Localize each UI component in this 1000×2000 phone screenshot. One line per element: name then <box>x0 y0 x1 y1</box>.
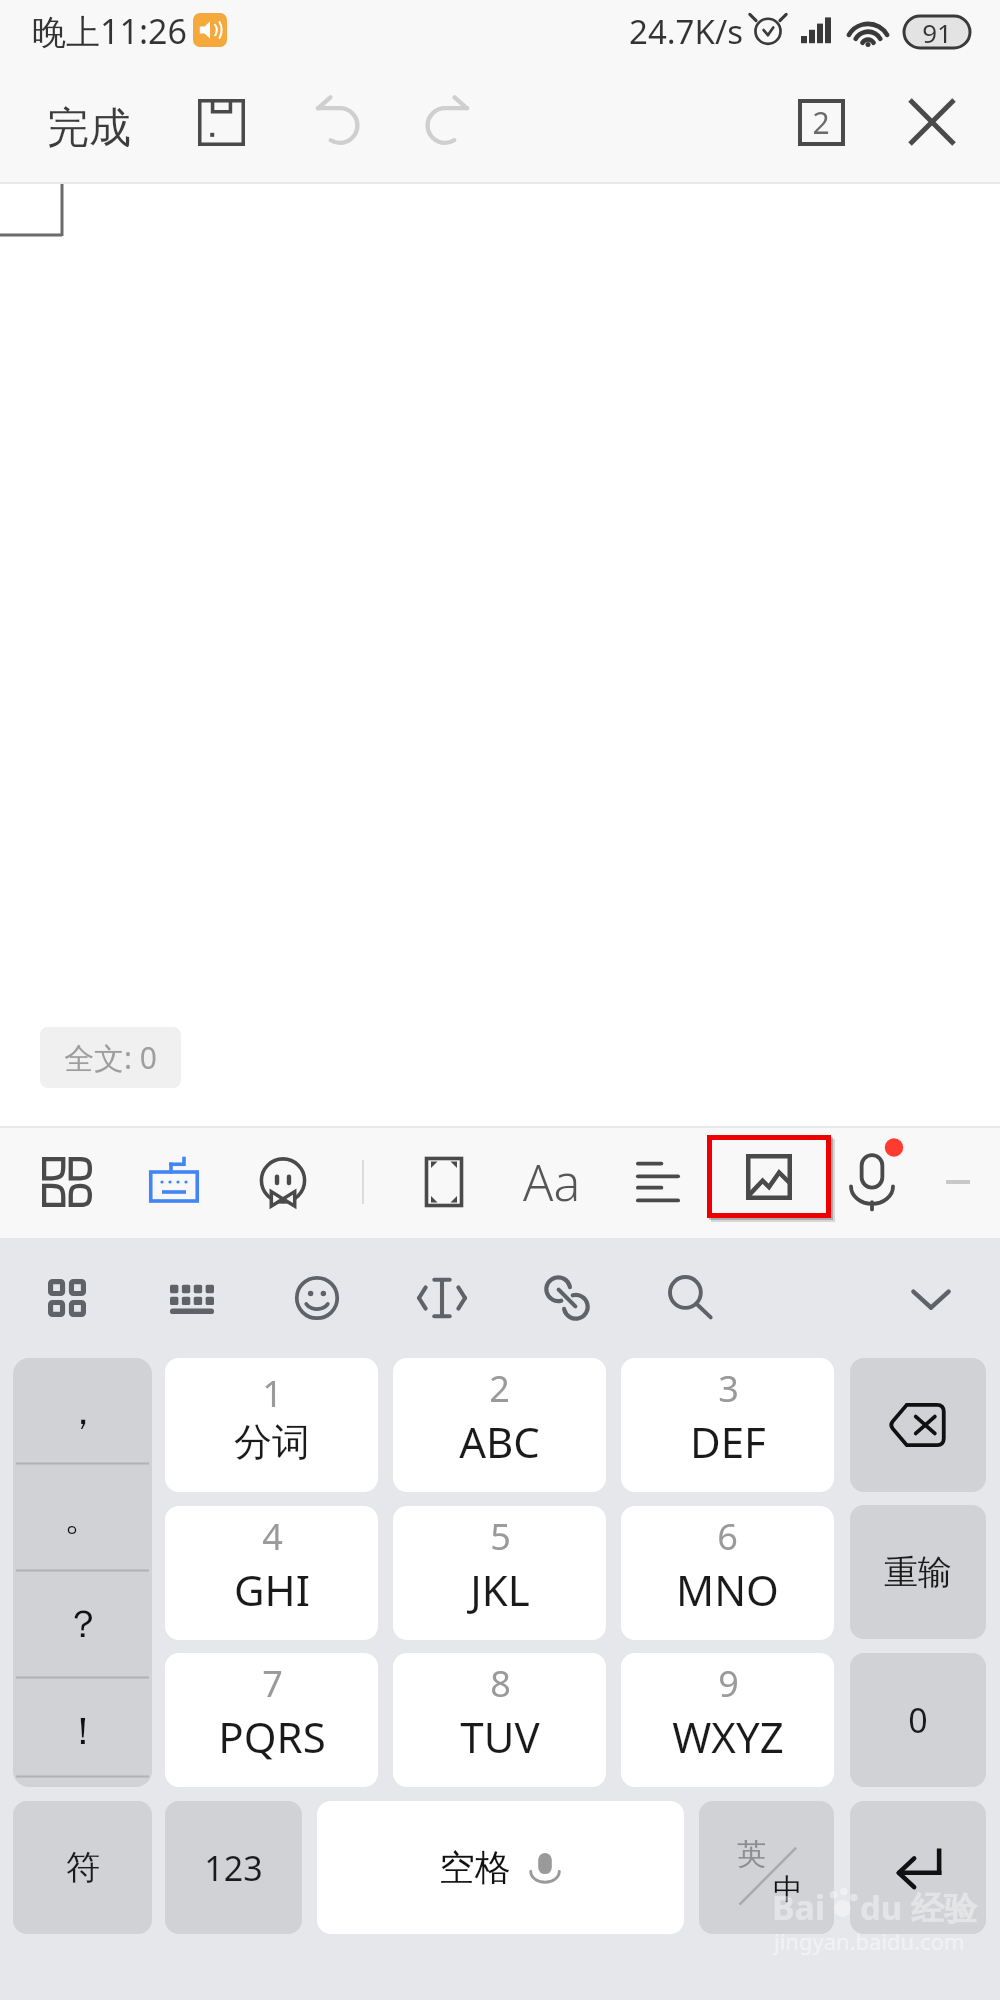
staticText: 7 <box>262 1659 283 1708</box>
button[interactable]: Align <box>614 1138 702 1226</box>
staticText: ！ <box>64 1707 102 1755</box>
staticText: jingyan.baidu.com <box>774 1926 965 1956</box>
staticText: 123 <box>204 1845 263 1891</box>
staticText: 0 <box>908 1697 928 1743</box>
button[interactable]: 6 <box>621 1506 834 1640</box>
button[interactable]: 1 <box>165 1358 378 1492</box>
button[interactable]: 空格 <box>317 1801 684 1934</box>
button[interactable]: 全文: 0 <box>40 1027 181 1088</box>
staticText: 分词 <box>234 1418 310 1466</box>
button[interactable]: Clipboard <box>531 1262 603 1334</box>
button[interactable]: Keyboard layout <box>156 1262 228 1334</box>
button[interactable]: Fullscreen <box>400 1138 488 1226</box>
staticText: 8 <box>490 1659 511 1708</box>
staticText: 91 <box>922 15 952 49</box>
staticText: TUV <box>460 1708 540 1765</box>
button[interactable]: 重输 <box>850 1505 986 1639</box>
button[interactable]: Enter <box>850 1801 986 1934</box>
staticText: 2 <box>812 102 830 143</box>
staticText: GHI <box>234 1561 310 1618</box>
staticText: 。 <box>64 1493 102 1541</box>
button[interactable]: 符 <box>13 1801 152 1934</box>
button[interactable]: Grid <box>31 1262 103 1334</box>
button[interactable]: Apps <box>23 1138 111 1226</box>
button[interactable]: Sticker <box>239 1138 327 1226</box>
button[interactable]: Hide keyboard <box>895 1262 967 1334</box>
staticText: 2 <box>489 1364 510 1413</box>
staticText: 重输 <box>884 1551 952 1594</box>
button[interactable]: 英 <box>699 1801 834 1934</box>
staticText: 符 <box>66 1846 100 1889</box>
button[interactable]: Keyboard <box>130 1138 218 1226</box>
button[interactable]: Aa <box>508 1138 596 1226</box>
staticText: 9 <box>718 1659 739 1708</box>
button[interactable]: Search <box>654 1262 726 1334</box>
button[interactable]: Undo <box>296 78 384 166</box>
staticText: 空格 <box>439 1845 511 1890</box>
button[interactable]: Save <box>177 78 265 166</box>
staticText: 英 <box>737 1836 766 1873</box>
button[interactable]: 完成 <box>26 78 152 178</box>
button[interactable]: 。 <box>13 1464 152 1570</box>
button[interactable]: ？ <box>13 1571 152 1677</box>
staticText: MNO <box>676 1561 779 1618</box>
button[interactable]: 7 <box>165 1653 378 1787</box>
staticText: WXYZ <box>672 1708 784 1765</box>
button[interactable]: Insert image <box>707 1135 831 1218</box>
button[interactable]: Close <box>888 78 976 166</box>
button[interactable]: 8 <box>393 1653 606 1787</box>
button[interactable]: 9 <box>621 1653 834 1787</box>
button[interactable]: Voice input <box>838 1148 906 1216</box>
button[interactable]: 4 <box>165 1506 378 1640</box>
staticText: du 经验 <box>860 1885 977 1930</box>
staticText: 中 <box>773 1871 802 1908</box>
button[interactable]: Backspace <box>850 1358 986 1492</box>
staticText: 全文: 0 <box>64 1037 157 1078</box>
staticText: 6 <box>717 1512 738 1561</box>
staticText: JKL <box>470 1561 530 1618</box>
staticText: 1 <box>262 1369 283 1418</box>
staticText: 晚上11:26 <box>32 8 187 54</box>
button[interactable]: 0 <box>850 1653 986 1787</box>
staticText: PQRS <box>218 1708 326 1765</box>
button[interactable]: Redo <box>401 78 489 166</box>
staticText: ABC <box>459 1413 540 1470</box>
staticText: 24.7K/s <box>629 9 743 54</box>
button[interactable]: 2 <box>393 1358 606 1492</box>
staticText: 5 <box>490 1512 511 1561</box>
button[interactable]: 5 <box>393 1506 606 1640</box>
button[interactable]: ， <box>13 1358 152 1463</box>
button[interactable]: Emoji <box>281 1262 353 1334</box>
staticText: Bai <box>772 1884 826 1930</box>
staticText: 3 <box>718 1364 739 1413</box>
button[interactable]: Cursor <box>406 1262 478 1334</box>
button[interactable]: Pages <box>777 78 865 166</box>
button[interactable]: ！ <box>13 1678 152 1784</box>
staticText: DEF <box>690 1413 766 1470</box>
staticText: ， <box>64 1387 102 1435</box>
staticText: ？ <box>64 1600 102 1648</box>
button[interactable]: 3 <box>621 1358 834 1492</box>
staticText: 4 <box>262 1512 283 1561</box>
staticText: 完成 <box>47 102 131 155</box>
staticText: Aa <box>523 1148 581 1216</box>
button[interactable]: 123 <box>165 1801 302 1934</box>
